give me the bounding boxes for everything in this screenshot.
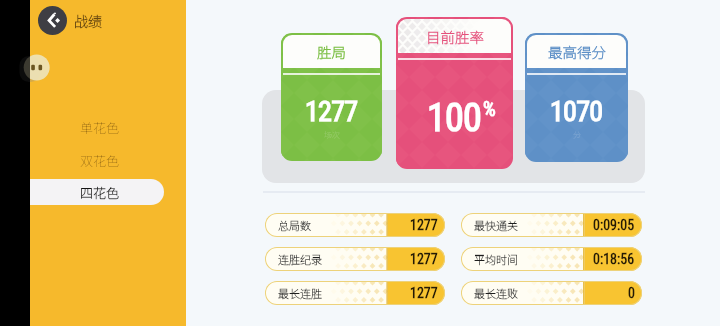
staticText: 1277 [305,95,358,128]
button[interactable]: 最快通关 [461,213,642,237]
staticText: 1277 [410,217,438,233]
staticText: 最高得分 [548,41,606,62]
staticText: 最长连败 [474,285,518,301]
staticText: 平均时间 [474,251,518,267]
staticText: 场次 [324,129,340,141]
staticText: 0:18:56 [593,251,635,267]
button[interactable]: 最高得分 [525,33,628,162]
button[interactable]: 胜局 [281,33,382,161]
staticText: 1070 [550,95,603,128]
button[interactable]: 连胜纪录 [265,247,445,271]
button[interactable]: Back [38,6,67,35]
button[interactable]: 最长连胜 [265,281,445,305]
staticText: 连胜纪录 [278,251,322,267]
staticText: 100 [427,96,482,141]
button[interactable]: 四花色 [30,179,164,205]
button[interactable]: 最长连败 [461,281,642,305]
staticText: % [483,97,496,120]
staticText: 最长连胜 [278,285,322,301]
staticText: 0:09:05 [593,217,635,233]
staticText: 胜局 [317,41,346,62]
staticText: 总局数 [278,217,311,233]
button[interactable]: 双花色 [30,147,164,173]
button[interactable]: 单花色 [30,114,164,140]
staticText: 最快通关 [474,217,518,233]
button[interactable]: 平均时间 [461,247,642,271]
staticText: 分 [573,129,581,141]
staticText: 单花色 [80,118,120,137]
staticText: 1277 [410,285,438,301]
staticText: 四花色 [80,183,120,202]
staticText: 目前胜率 [426,26,484,47]
button[interactable]: Assistant [19,54,45,84]
staticText: 1277 [410,251,438,267]
staticText: 0 [628,285,635,301]
button[interactable]: 总局数 [265,213,445,237]
button[interactable]: 目前胜率 [396,17,513,169]
staticText: 双花色 [80,151,120,170]
staticText: 战绩 [74,11,102,31]
